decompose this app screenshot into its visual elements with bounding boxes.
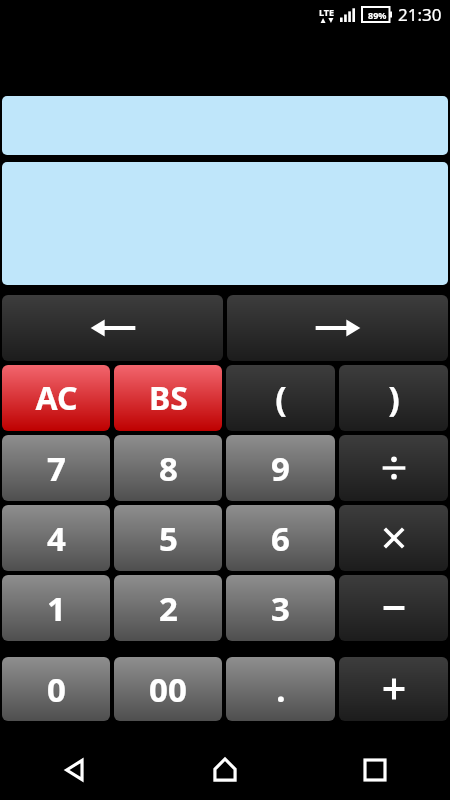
button[interactable]: )	[339, 365, 448, 431]
button[interactable]: AC	[2, 365, 110, 431]
button[interactable]: BS	[114, 365, 222, 431]
button[interactable]: Multiply	[339, 505, 448, 571]
staticText: AC	[35, 376, 78, 420]
button[interactable]: Minus	[339, 575, 448, 641]
staticText: 3	[271, 586, 290, 631]
button[interactable]: 6	[226, 505, 335, 571]
staticText: BS	[149, 376, 188, 420]
staticText: 89%	[368, 9, 387, 21]
staticText: )	[388, 375, 400, 421]
button[interactable]: 5	[114, 505, 222, 571]
button[interactable]: 9	[226, 435, 335, 501]
button[interactable]: 0	[2, 657, 110, 721]
staticText: 2	[159, 586, 178, 631]
button[interactable]: Recents	[300, 740, 450, 800]
button[interactable]: 4	[2, 505, 110, 571]
button[interactable]	[2, 96, 448, 155]
staticText: 7	[47, 446, 66, 491]
button[interactable]	[2, 162, 448, 285]
button[interactable]: 3	[226, 575, 335, 641]
staticText: 4	[47, 516, 66, 561]
button[interactable]: 2	[114, 575, 222, 641]
button[interactable]: Back	[0, 740, 150, 800]
button[interactable]: 8	[114, 435, 222, 501]
button[interactable]: Cursor right	[227, 295, 448, 361]
staticText: 0	[47, 667, 66, 712]
staticText: 5	[159, 516, 178, 561]
staticText: .	[276, 667, 286, 712]
button[interactable]: Home	[150, 740, 300, 800]
staticText: 6	[271, 516, 290, 561]
staticText: 00	[149, 667, 187, 712]
staticText: LTE	[319, 6, 335, 18]
staticText: (	[275, 375, 287, 421]
staticText: 1	[47, 586, 66, 631]
button[interactable]: 1	[2, 575, 110, 641]
staticText: 21:30	[398, 3, 442, 26]
button[interactable]: Cursor left	[2, 295, 223, 361]
staticText: 8	[159, 446, 178, 491]
button[interactable]: (	[226, 365, 335, 431]
staticText: 9	[271, 446, 290, 491]
button[interactable]: 7	[2, 435, 110, 501]
button[interactable]: Plus	[339, 657, 448, 721]
button[interactable]: .	[226, 657, 335, 721]
button[interactable]: 00	[114, 657, 222, 721]
button[interactable]: Divide	[339, 435, 448, 501]
